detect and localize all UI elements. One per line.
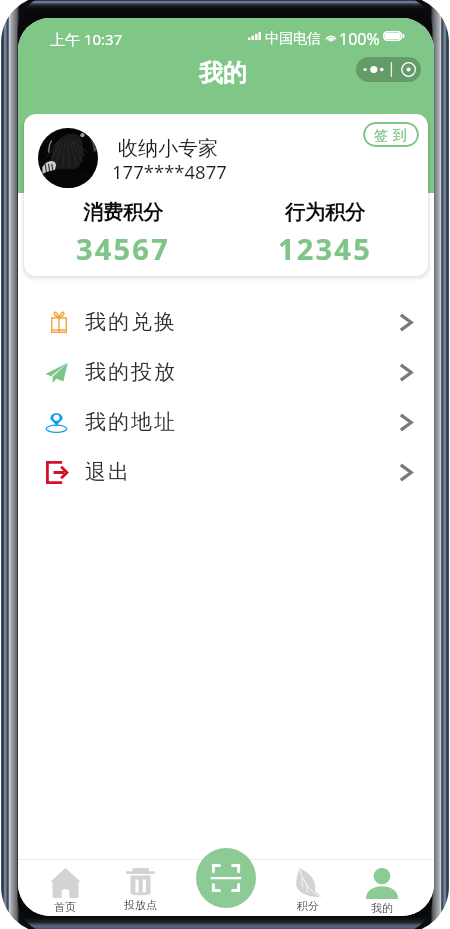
- button[interactable]: 我的兑换: [18, 297, 434, 347]
- staticText: 我的兑换: [84, 309, 176, 335]
- staticText: 34567: [76, 229, 170, 268]
- staticText: 投放点: [124, 898, 157, 912]
- button[interactable]: 首页: [28, 858, 102, 916]
- button[interactable]: Scan: [196, 848, 256, 908]
- button[interactable]: 签 到: [363, 122, 419, 147]
- button[interactable]: 我的: [345, 858, 419, 916]
- staticText: 中国电信: [265, 30, 321, 48]
- staticText: 12345: [278, 229, 372, 268]
- staticText: 上午 10:37: [50, 29, 123, 49]
- staticText: 首页: [54, 900, 76, 914]
- button[interactable]: 我的地址: [18, 397, 434, 447]
- staticText: 100%: [339, 28, 380, 50]
- staticText: 我的投放: [84, 359, 176, 385]
- staticText: 收纳小专家: [118, 136, 218, 161]
- staticText: 退出: [84, 459, 130, 485]
- button[interactable]: 积分: [271, 858, 345, 916]
- staticText: 消费积分: [83, 200, 163, 225]
- staticText: 积分: [297, 899, 319, 913]
- button[interactable]: 投放点: [103, 858, 177, 916]
- staticText: 我的: [199, 58, 247, 88]
- button[interactable]: 我的投放: [18, 347, 434, 397]
- button[interactable]: More options: [356, 57, 421, 82]
- staticText: 我的: [371, 901, 393, 915]
- button[interactable]: 退出: [18, 447, 434, 497]
- staticText: 我的地址: [84, 409, 176, 435]
- staticText: 签 到: [374, 125, 408, 144]
- staticText: 177****4877: [112, 159, 227, 184]
- staticText: 行为积分: [285, 200, 365, 225]
